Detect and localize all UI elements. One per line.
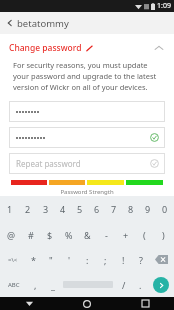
button[interactable] <box>9 101 165 122</box>
button[interactable]: - <box>97 222 116 247</box>
button[interactable]: Home <box>58 297 116 310</box>
other: Valid <box>150 159 159 168</box>
other: Delete <box>155 255 168 264</box>
staticText: * <box>31 254 36 266</box>
button[interactable]: ( <box>135 222 154 247</box>
button[interactable]: 5 <box>71 196 88 222</box>
button[interactable]: # <box>21 222 40 247</box>
staticText: 5 <box>77 203 83 215</box>
button[interactable]: Delete <box>150 247 173 272</box>
button[interactable]: 0 <box>156 196 173 222</box>
staticText: betatommy <box>17 17 69 30</box>
staticText: ( <box>143 229 146 241</box>
button[interactable]: * <box>24 247 42 272</box>
staticText: 9 <box>145 203 151 215</box>
staticText: + <box>123 229 129 241</box>
staticText: 4 <box>60 203 66 215</box>
staticText: 0 <box>162 203 168 215</box>
button[interactable]: ? <box>132 247 150 272</box>
button[interactable]: Back <box>0 297 58 310</box>
button[interactable]: & <box>78 222 97 247</box>
staticText: ? <box>139 254 143 266</box>
button[interactable]: 8 <box>122 196 139 222</box>
button[interactable]: Back <box>0 12 174 34</box>
staticText: 3 <box>43 203 49 215</box>
button[interactable]: 9 <box>139 196 156 222</box>
button[interactable]: @ <box>1 222 21 247</box>
staticText: For security reasons, you must update yo… <box>13 60 161 92</box>
staticText: _ <box>51 279 55 291</box>
button[interactable]: ' <box>60 247 78 272</box>
button[interactable]: Valid <box>9 127 165 148</box>
staticText: ! <box>122 254 125 266</box>
staticText: ABC <box>8 281 20 289</box>
staticText: ; <box>104 254 107 266</box>
staticText: : <box>86 254 89 266</box>
button[interactable]: 2 <box>19 196 37 222</box>
staticText: =\< <box>8 256 18 264</box>
button[interactable]: Enter <box>149 272 173 297</box>
staticText: 1 <box>7 203 13 215</box>
button[interactable]: Change password <box>0 40 174 56</box>
staticText: ) <box>162 229 165 241</box>
staticText: ' <box>68 254 71 266</box>
button[interactable]: + <box>116 222 135 247</box>
other: Back <box>5 18 15 28</box>
button[interactable]: Recents <box>116 297 174 310</box>
button[interactable]: Repeat password <box>9 153 165 174</box>
staticText: @ <box>7 229 16 241</box>
button[interactable]: 3 <box>37 196 54 222</box>
staticText: # <box>28 229 34 241</box>
staticText: Repeat password <box>16 158 81 169</box>
button[interactable]: ; <box>96 247 114 272</box>
button[interactable]: . <box>132 272 149 297</box>
staticText: % <box>65 229 73 241</box>
button[interactable]: $ <box>40 222 59 247</box>
button[interactable]: 4 <box>54 196 71 222</box>
staticText: & <box>84 229 91 241</box>
staticText: - <box>105 229 108 241</box>
button[interactable]: 7 <box>105 196 122 222</box>
button[interactable]: % <box>59 222 78 247</box>
staticText: . <box>139 279 142 291</box>
button[interactable]: 1 <box>1 196 19 222</box>
other: Valid <box>150 133 159 142</box>
button[interactable]: , <box>27 272 44 297</box>
staticText: , <box>34 279 37 291</box>
staticText: Change password <box>9 42 82 54</box>
staticText: 7 <box>111 203 117 215</box>
staticText: 2 <box>25 203 31 215</box>
button[interactable]: =\< <box>1 247 24 272</box>
staticText: 1:09 <box>157 1 171 11</box>
button[interactable]: 6 <box>88 196 105 222</box>
other: Collapse <box>153 42 165 54</box>
button[interactable]: Space <box>61 272 115 297</box>
other: Enter <box>153 277 169 293</box>
button[interactable]: " <box>42 247 60 272</box>
staticText: 6 <box>94 203 100 215</box>
button[interactable]: : <box>78 247 96 272</box>
staticText: / <box>122 279 126 291</box>
button[interactable]: ABC <box>1 272 27 297</box>
button[interactable]: _ <box>44 272 61 297</box>
button[interactable]: / <box>115 272 132 297</box>
button[interactable]: ! <box>114 247 132 272</box>
staticText: " <box>49 254 53 266</box>
staticText: 8 <box>128 203 134 215</box>
button[interactable]: ) <box>154 222 173 247</box>
staticText: Password Strength <box>0 188 174 196</box>
staticText: $ <box>47 229 53 241</box>
